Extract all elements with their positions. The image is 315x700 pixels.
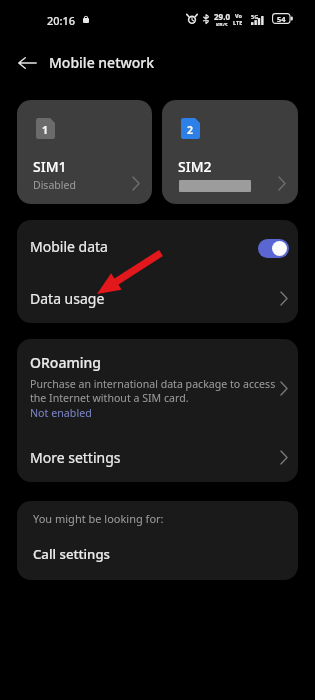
staticText: SIM2 [178,157,212,176]
staticText: ORoaming [30,353,101,372]
staticText: Mobile network [49,53,155,72]
staticText: Purchase an international data package t… [30,377,276,405]
staticText: Not enabled [30,406,92,421]
button[interactable]: ORoaming [17,339,298,432]
staticText: You might be looking for: [33,511,164,526]
button[interactable]: Mobile data [17,220,298,273]
staticText: LTE [233,19,243,26]
button[interactable]: Call settings [17,526,298,580]
staticText: 5G [251,13,259,20]
button[interactable]: 1 [17,100,152,204]
staticText: Call settings [33,545,110,563]
staticText: 29.0 [214,11,230,22]
button[interactable]: Back [18,40,46,85]
staticText: More settings [30,448,280,467]
staticText: 2 [187,123,194,137]
staticText: SIM1 [33,157,67,176]
staticText: 54 [277,14,286,24]
button[interactable]: 2 [162,100,298,204]
staticText: Disabled [33,178,76,192]
staticText: KB/S [216,22,228,26]
staticText: 20:16 [47,13,76,28]
button[interactable]: Data usage [17,273,298,323]
staticText: Data usage [30,289,280,308]
button[interactable]: More settings [17,432,298,482]
staticText: 1 [42,123,49,137]
button[interactable]: Mobile data toggle [258,239,289,258]
staticText: Mobile data [30,237,258,256]
staticText: Vo [235,12,242,19]
